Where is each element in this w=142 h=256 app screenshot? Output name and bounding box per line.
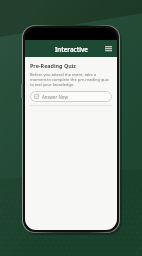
button[interactable]: Answer Now [30, 91, 112, 102]
staticText: Before you attend the event, take a mome… [30, 72, 112, 87]
staticText: Interactive [55, 45, 88, 53]
staticText: Pre-Reading Quiz [30, 62, 76, 69]
staticText: Answer Now [42, 94, 68, 100]
button[interactable]: Menu [103, 44, 113, 54]
